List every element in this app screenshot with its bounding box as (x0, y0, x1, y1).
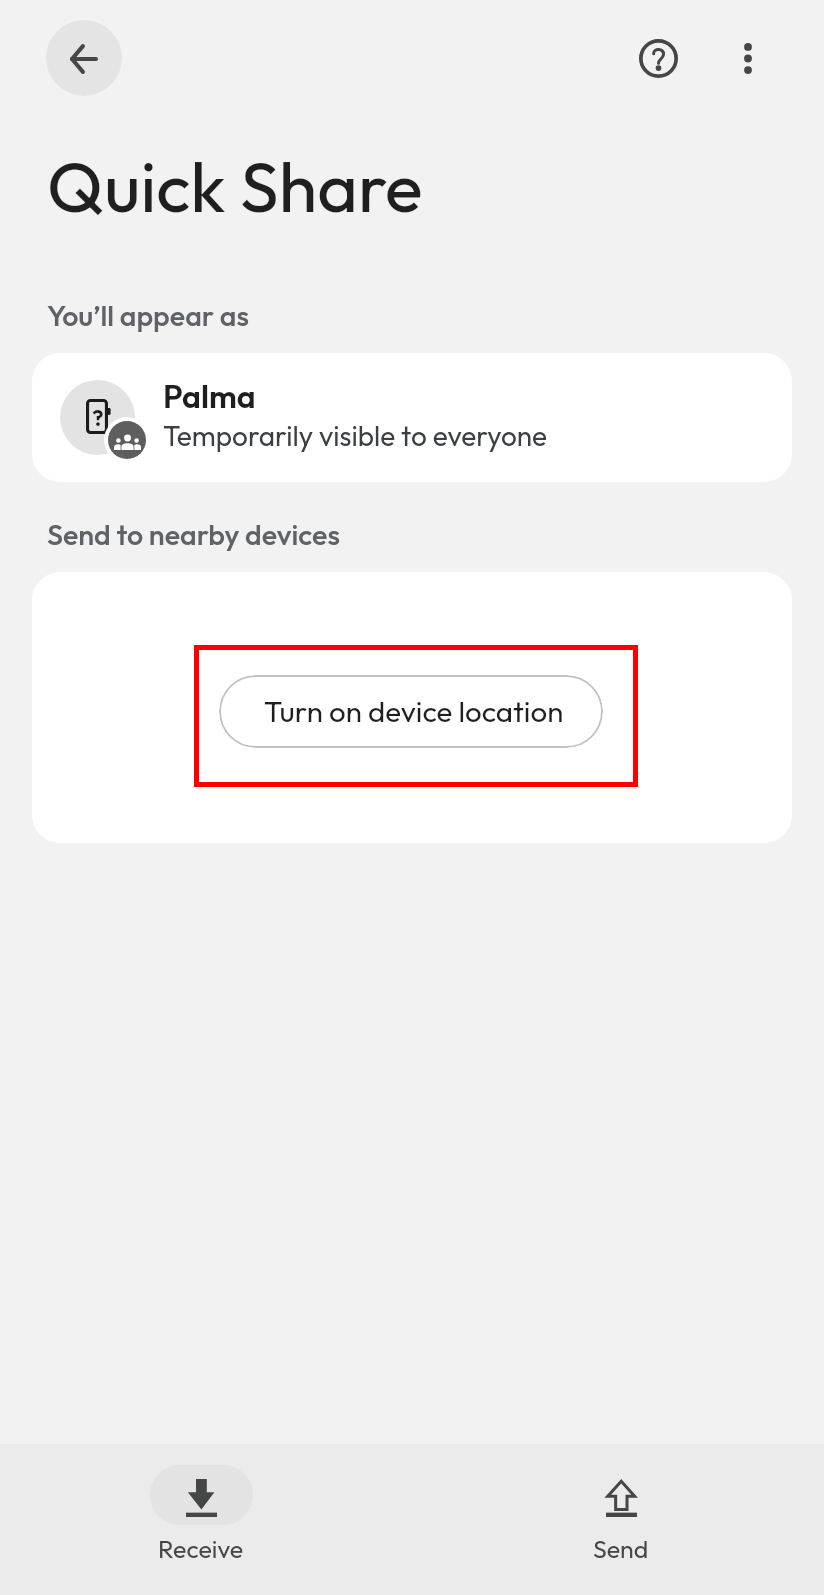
button[interactable]: ? (32, 353, 792, 482)
staticText: Temporarily visible to everyone (163, 418, 548, 453)
staticText: Quick Share (47, 142, 423, 230)
staticText: ? (92, 403, 104, 432)
button[interactable]: Back (46, 20, 122, 96)
staticText: Turn on device location (264, 692, 564, 729)
button[interactable]: Help (620, 20, 696, 96)
button[interactable]: Turn on device location (219, 675, 603, 748)
button[interactable]: Receive (95, 1444, 307, 1595)
staticText: Send to nearby devices (47, 516, 340, 552)
staticText: Send (593, 1533, 649, 1565)
staticText: Receive (158, 1533, 244, 1565)
staticText: Palma (163, 376, 256, 416)
button[interactable]: Send (515, 1444, 727, 1595)
staticText: You’ll appear as (47, 297, 249, 333)
button[interactable]: More options (710, 20, 786, 96)
